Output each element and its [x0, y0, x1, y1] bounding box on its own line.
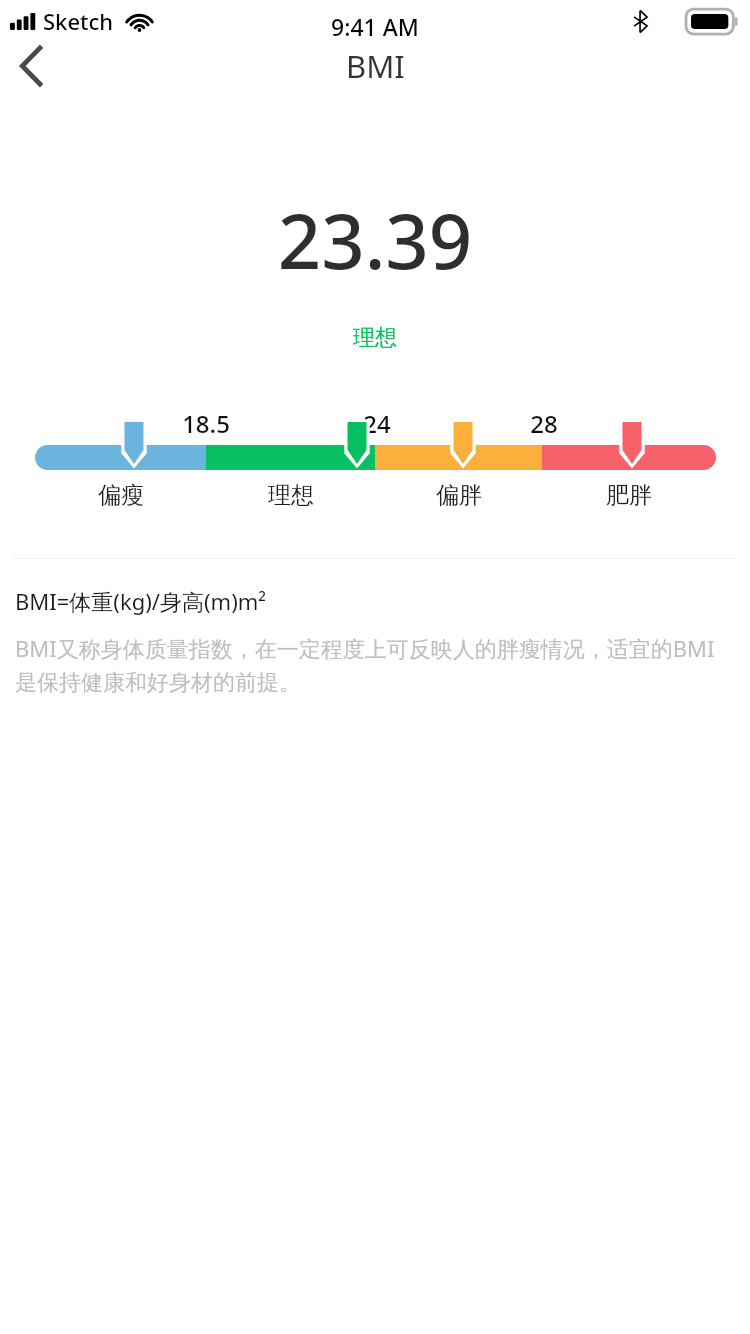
staticText: BMI [346, 45, 405, 87]
staticText: 理想 [0, 324, 750, 352]
staticText: 偏胖 [435, 481, 483, 510]
staticText: BMI=体重(kg)/身高(m)m² [15, 586, 266, 616]
staticText: 18.5 [172, 407, 240, 440]
staticText: 理想 [267, 481, 315, 510]
button[interactable]: Back [0, 42, 62, 90]
staticText: 24 [343, 407, 411, 440]
staticText: 28 [510, 407, 578, 440]
staticText: BMI又称身体质量指数，在一定程度上可反映人的胖瘦情况，适宜的BMI是保持健康和… [15, 633, 735, 696]
staticText: 9:41 AM [331, 11, 419, 42]
staticText: 23.39 [0, 188, 750, 292]
staticText: 偏瘦 [97, 481, 145, 510]
staticText: Sketch [43, 6, 114, 36]
staticText: 肥胖 [605, 481, 653, 510]
